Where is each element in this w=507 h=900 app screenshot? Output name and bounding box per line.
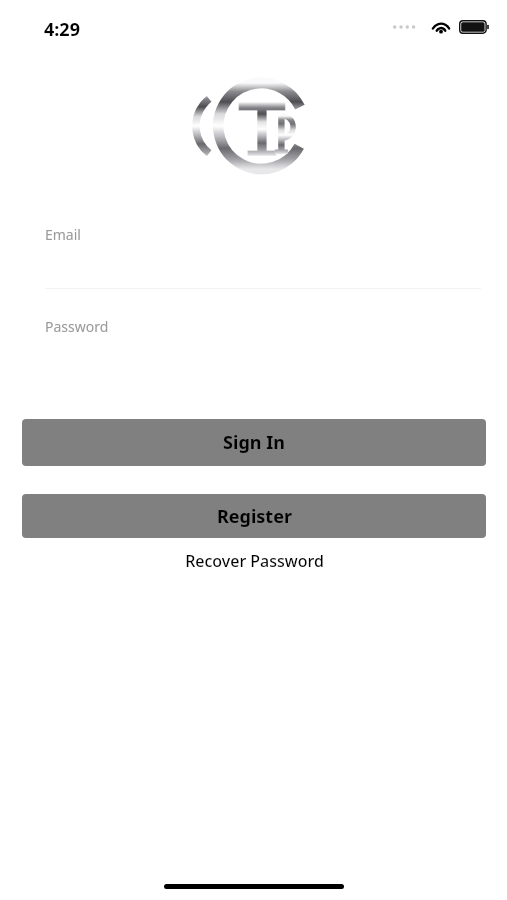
staticText: Sign In [223, 430, 285, 455]
staticText: Register [217, 504, 292, 529]
button[interactable]: Sign In [22, 419, 486, 466]
staticText: 4:29 [44, 17, 80, 42]
button[interactable]: Password [45, 304, 481, 382]
staticText: Password [45, 317, 109, 336]
button[interactable]: Email [45, 212, 481, 290]
button[interactable]: Recover Password [22, 546, 486, 576]
button[interactable]: Register [22, 494, 486, 538]
staticText: Email [45, 225, 81, 244]
staticText: Recover Password [185, 550, 324, 572]
